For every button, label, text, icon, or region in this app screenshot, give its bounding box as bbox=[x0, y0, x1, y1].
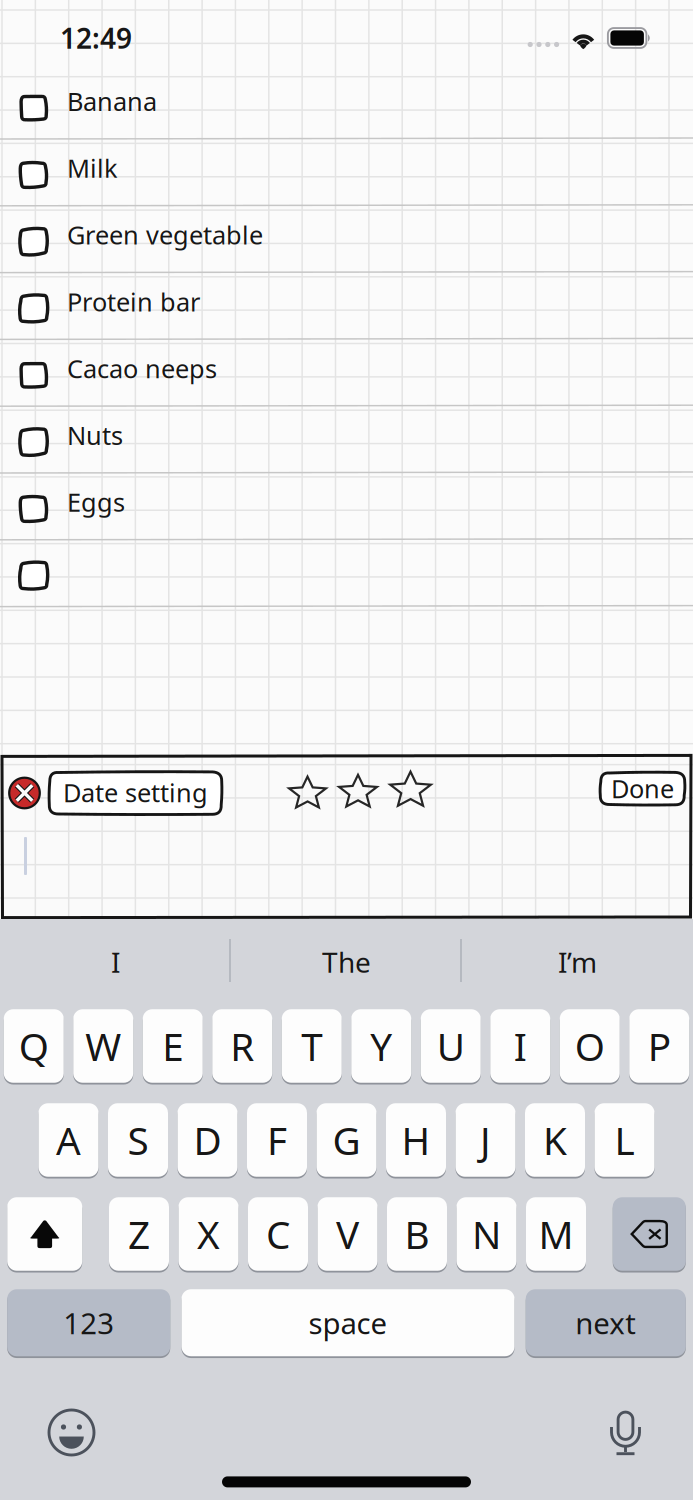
staticText: L bbox=[614, 1114, 634, 1166]
staticText: I bbox=[514, 1020, 527, 1072]
button[interactable]: B bbox=[387, 1196, 447, 1272]
button[interactable]: Done bbox=[599, 771, 686, 806]
staticText: The bbox=[322, 943, 371, 981]
button[interactable]: Eggs bbox=[0, 473, 693, 540]
staticText: B bbox=[404, 1208, 429, 1260]
button[interactable]: Delete bbox=[613, 1196, 686, 1272]
button[interactable]: D bbox=[177, 1102, 237, 1178]
button[interactable]: O bbox=[560, 1008, 620, 1084]
button[interactable]: next bbox=[526, 1288, 686, 1357]
button[interactable]: F bbox=[247, 1102, 307, 1178]
button[interactable]: Shift bbox=[7, 1196, 82, 1272]
staticText: D bbox=[193, 1114, 221, 1166]
staticText: space bbox=[308, 1303, 387, 1342]
button[interactable]: Emoji keyboard bbox=[49, 1410, 94, 1455]
staticText: T bbox=[301, 1020, 322, 1072]
button[interactable]: H bbox=[386, 1102, 446, 1178]
button[interactable]: G bbox=[316, 1102, 376, 1178]
button[interactable]: Close bbox=[8, 776, 41, 809]
staticText: U bbox=[437, 1020, 465, 1072]
button[interactable]: C bbox=[248, 1196, 308, 1272]
button[interactable]: P bbox=[629, 1008, 689, 1084]
button[interactable]: 123 bbox=[7, 1288, 170, 1357]
staticText: E bbox=[162, 1020, 183, 1072]
button[interactable]: space bbox=[181, 1288, 514, 1357]
button[interactable]: M bbox=[526, 1196, 586, 1272]
staticText: A bbox=[56, 1114, 81, 1166]
staticText: Banana bbox=[67, 84, 157, 118]
button[interactable]: T bbox=[282, 1008, 342, 1084]
staticText: J bbox=[480, 1114, 491, 1166]
staticText: Z bbox=[128, 1208, 150, 1260]
button[interactable]: I bbox=[0, 919, 231, 991]
staticText: Y bbox=[370, 1020, 392, 1072]
button[interactable]: S bbox=[108, 1102, 168, 1178]
button[interactable]: Z bbox=[109, 1196, 169, 1272]
staticText: Protein bar bbox=[67, 285, 200, 318]
staticText: S bbox=[127, 1114, 148, 1166]
button[interactable]: Cacao neeps bbox=[0, 340, 693, 406]
button[interactable]: Y bbox=[351, 1008, 411, 1084]
staticText: F bbox=[267, 1114, 287, 1166]
staticText: M bbox=[538, 1208, 573, 1260]
button[interactable]: Milk bbox=[0, 139, 693, 206]
button[interactable]: N bbox=[456, 1196, 516, 1272]
button[interactable]: The bbox=[231, 919, 462, 991]
button[interactable]: X bbox=[178, 1196, 238, 1272]
button[interactable]: V bbox=[317, 1196, 377, 1272]
button[interactable]: I’m bbox=[462, 919, 693, 991]
staticText: Q bbox=[19, 1020, 49, 1072]
button[interactable]: R bbox=[212, 1008, 272, 1084]
button[interactable]: L bbox=[594, 1102, 654, 1178]
button[interactable]: Nuts bbox=[0, 406, 693, 473]
button[interactable]: Protein bar bbox=[0, 273, 693, 340]
button[interactable]: I bbox=[490, 1008, 550, 1084]
staticText: Milk bbox=[67, 151, 118, 185]
staticText: O bbox=[575, 1020, 605, 1072]
button[interactable]: Dictation bbox=[610, 1409, 641, 1455]
staticText: Nuts bbox=[67, 418, 123, 452]
button[interactable]: E bbox=[143, 1008, 203, 1084]
staticText: X bbox=[197, 1208, 220, 1260]
button[interactable]: Green vegetable bbox=[0, 206, 693, 273]
staticText: N bbox=[472, 1208, 501, 1260]
staticText: R bbox=[230, 1020, 254, 1072]
staticText: H bbox=[401, 1114, 430, 1166]
button[interactable]: W bbox=[73, 1008, 133, 1084]
staticText: Green vegetable bbox=[67, 218, 263, 251]
staticText: G bbox=[332, 1114, 360, 1166]
staticText: C bbox=[266, 1208, 290, 1260]
staticText: 12:49 bbox=[60, 19, 132, 57]
staticText: 123 bbox=[63, 1303, 114, 1342]
staticText: K bbox=[543, 1114, 567, 1166]
button[interactable]: A bbox=[38, 1102, 98, 1178]
button[interactable]: Date setting bbox=[48, 770, 223, 815]
staticText: I bbox=[111, 943, 120, 981]
staticText: P bbox=[648, 1020, 671, 1072]
staticText: V bbox=[336, 1208, 359, 1260]
button[interactable]: K bbox=[525, 1102, 585, 1178]
staticText: Cacao neeps bbox=[67, 351, 217, 385]
staticText: Date setting bbox=[63, 776, 208, 809]
button[interactable]: Q bbox=[4, 1008, 64, 1084]
button[interactable]: U bbox=[421, 1008, 481, 1084]
staticText: Done bbox=[611, 772, 674, 805]
button[interactable] bbox=[0, 540, 693, 607]
staticText: I’m bbox=[558, 943, 597, 981]
staticText: W bbox=[85, 1020, 121, 1072]
button[interactable]: J bbox=[455, 1102, 515, 1178]
button[interactable]: Banana bbox=[0, 72, 693, 139]
staticText: Eggs bbox=[67, 485, 125, 519]
staticText: next bbox=[575, 1303, 636, 1342]
